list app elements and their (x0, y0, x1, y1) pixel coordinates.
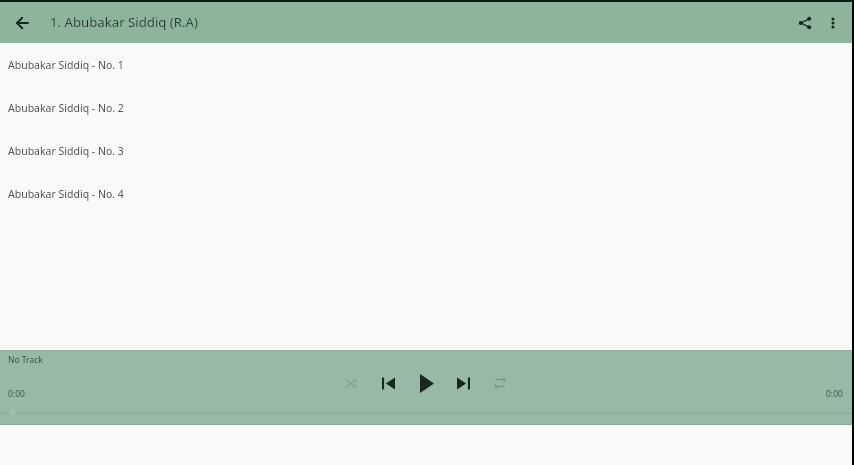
staticText: Abubakar Siddiq - No. 1 (8, 58, 124, 72)
button[interactable]: Navigate up (8, 9, 36, 37)
button[interactable]: Abubakar Siddiq - No. 3 (0, 129, 854, 172)
staticText: 1. Abubakar Siddiq (R.A) (50, 13, 198, 31)
staticText: Abubakar Siddiq - No. 3 (8, 144, 124, 158)
staticText: Abubakar Siddiq - No. 2 (8, 101, 124, 115)
button[interactable]: Abubakar Siddiq - No. 4 (0, 172, 854, 215)
button[interactable]: Repeat (486, 369, 514, 397)
button[interactable]: Abubakar Siddiq - No. 2 (0, 86, 854, 129)
button[interactable]: Play (413, 369, 441, 397)
button[interactable]: Shuffle (337, 369, 365, 397)
staticText: No Track (8, 354, 43, 366)
button[interactable]: Share (791, 9, 819, 37)
button[interactable]: More options (819, 9, 847, 37)
staticText: Abubakar Siddiq - No. 4 (8, 187, 124, 201)
button[interactable]: Abubakar Siddiq - No. 1 (0, 43, 854, 86)
staticText: 0:00 (8, 388, 25, 400)
button[interactable]: Next (449, 369, 477, 397)
staticText: 0:00 (826, 388, 843, 400)
button[interactable]: Previous (374, 369, 402, 397)
button[interactable]: Seek bar (0, 405, 854, 420)
